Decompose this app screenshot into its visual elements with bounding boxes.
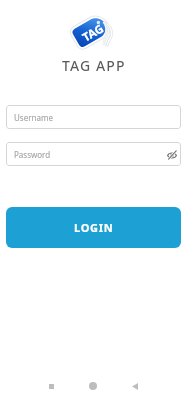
staticText: Password [14, 149, 51, 160]
button[interactable]: LOGIN [6, 207, 181, 248]
button[interactable]: Show password [165, 147, 179, 161]
button[interactable]: Home [76, 374, 110, 398]
staticText: LOGIN [74, 220, 114, 235]
button[interactable]: Back [118, 374, 152, 398]
button[interactable]: Recents [34, 374, 68, 398]
staticText: TAG [79, 21, 107, 45]
button[interactable]: Username [6, 105, 181, 129]
button[interactable]: Password [6, 142, 181, 166]
staticText: TAG APP [62, 56, 126, 75]
staticText: Username [14, 112, 53, 123]
